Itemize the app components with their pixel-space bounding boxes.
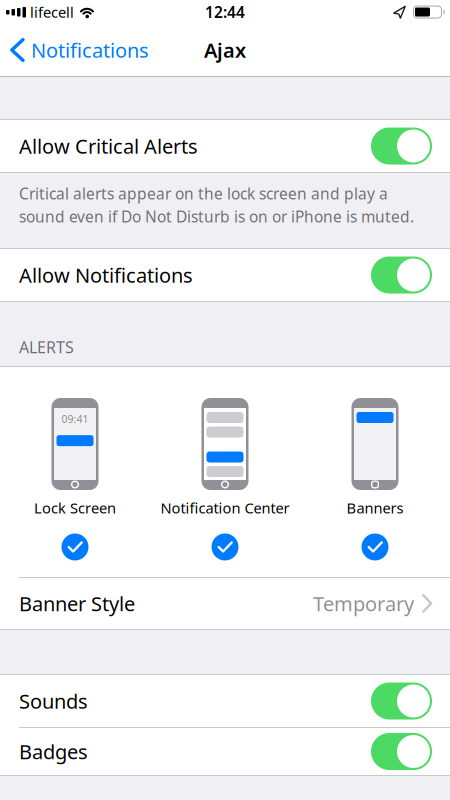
button[interactable]: Sounds (0, 675, 450, 727)
button[interactable]: Banner Style (0, 578, 450, 629)
staticText: Notifications (31, 37, 149, 63)
staticText: ALERTS (19, 336, 74, 358)
staticText: Allow Critical Alerts (19, 133, 198, 159)
button[interactable]: Back (0, 37, 149, 63)
staticText: Sounds (19, 688, 88, 714)
staticText: Notification Center (160, 498, 289, 517)
staticText: 09:41 (61, 412, 88, 426)
staticText: lifecell (30, 2, 74, 22)
button[interactable]: Badges (0, 728, 450, 775)
staticText: Allow Notifications (19, 262, 193, 288)
staticText: Temporary (313, 590, 414, 617)
button[interactable]: Lock Screen (61, 533, 88, 560)
button[interactable]: Notification Center (211, 533, 238, 560)
staticText: Banner Style (19, 590, 135, 617)
staticText: sound even if Do Not Disturb is on or iP… (19, 206, 414, 227)
staticText: Banners (346, 498, 403, 517)
staticText: Lock Screen (34, 498, 116, 517)
staticText: Critical alerts appear on the lock scree… (19, 183, 388, 204)
button[interactable]: Banners (361, 533, 388, 560)
button[interactable]: Allow Critical Alerts (0, 120, 450, 172)
staticText: Badges (19, 738, 88, 765)
staticText: Ajax (204, 37, 246, 63)
staticText: 12:44 (205, 1, 245, 23)
button[interactable]: Allow Notifications (0, 249, 450, 301)
